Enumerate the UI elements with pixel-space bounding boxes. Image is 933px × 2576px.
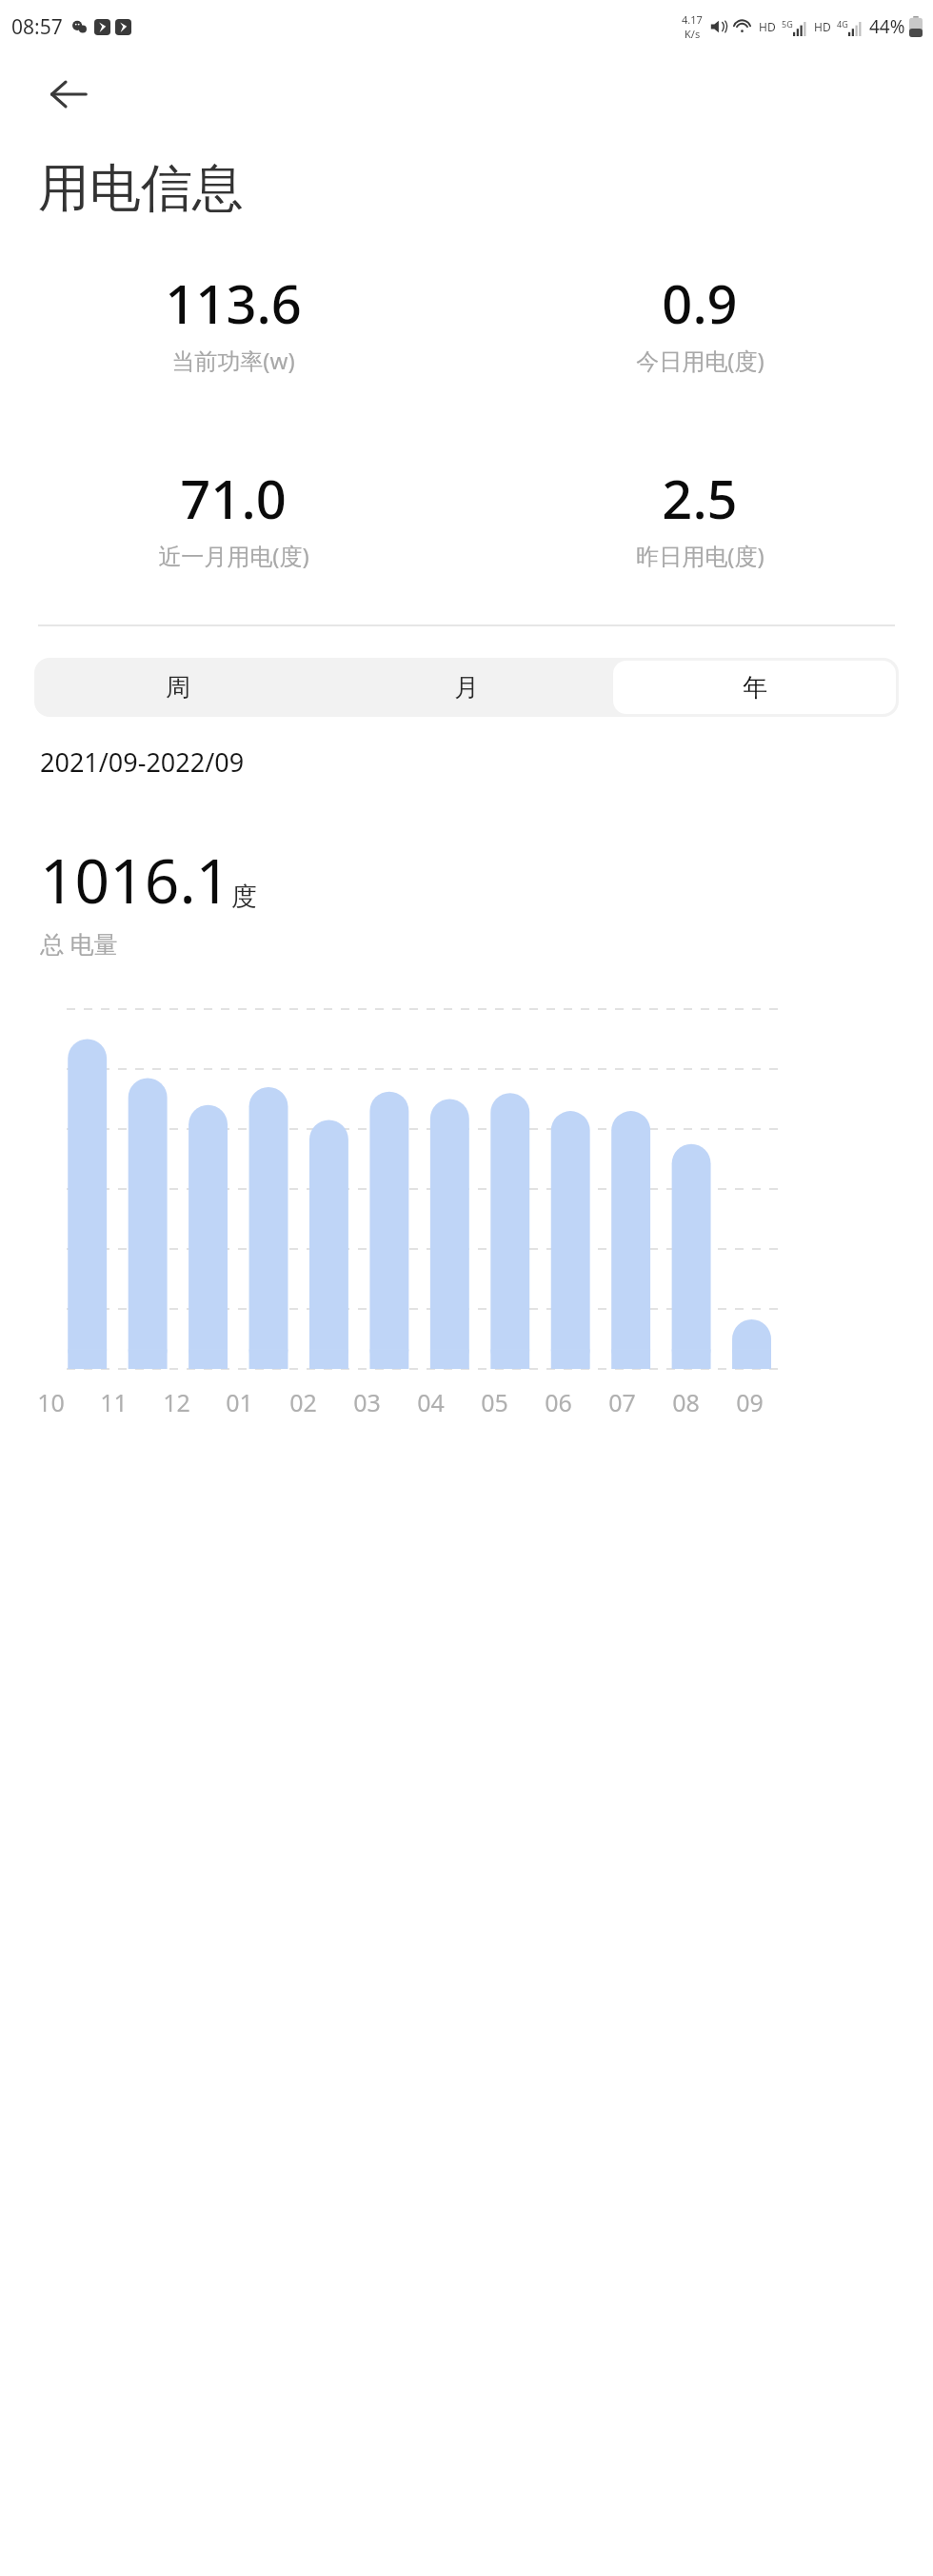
staticText: 04 [417, 1386, 445, 1418]
staticText: 12 [163, 1386, 190, 1418]
staticText: K/s [685, 27, 701, 41]
staticText: 用电信息 [38, 156, 244, 221]
staticText: 08:57 [11, 13, 63, 41]
staticText: 昨日用电(度) [636, 540, 764, 571]
staticText: 月 [454, 672, 479, 703]
staticText: 44% [869, 14, 905, 39]
staticText: 02 [289, 1386, 317, 1418]
button[interactable]: 0.9 [466, 267, 933, 376]
staticText: 08 [672, 1386, 700, 1418]
staticText: 06 [545, 1386, 572, 1418]
staticText: 71.0 [180, 462, 287, 534]
staticText: HD [814, 19, 831, 34]
button[interactable]: 周 [37, 661, 319, 714]
staticText: 09 [736, 1386, 764, 1418]
staticText: 113.6 [165, 267, 302, 339]
staticText: 近一月用电(度) [158, 540, 309, 571]
staticText: 今日用电(度) [636, 345, 764, 376]
staticText: 1016.1 [40, 839, 231, 921]
staticText: HD [759, 19, 776, 34]
staticText: 05 [481, 1386, 508, 1418]
staticText: 周 [166, 672, 190, 703]
button[interactable]: 年 [613, 661, 896, 714]
staticText: 03 [353, 1386, 381, 1418]
staticText: 10 [37, 1386, 65, 1418]
staticText: 5G [782, 18, 793, 30]
staticText: 4G [837, 18, 848, 30]
button[interactable]: 113.6 [0, 267, 466, 376]
button[interactable]: 月 [325, 661, 607, 714]
staticText: 2021/09-2022/09 [40, 744, 245, 780]
staticText: 年 [743, 672, 767, 703]
staticText: 0.9 [662, 267, 738, 339]
staticText: 2.5 [662, 462, 738, 534]
staticText: 11 [100, 1386, 128, 1418]
staticText: 度 [231, 881, 257, 913]
staticText: 4.17 [682, 12, 703, 27]
button[interactable]: 2.5 [466, 462, 933, 571]
staticText: 01 [226, 1386, 253, 1418]
button[interactable]: 71.0 [0, 462, 466, 571]
button[interactable]: Back [44, 69, 93, 119]
staticText: 总 电量 [40, 927, 118, 960]
staticText: 07 [608, 1386, 636, 1418]
staticText: 当前功率(w) [171, 345, 295, 376]
